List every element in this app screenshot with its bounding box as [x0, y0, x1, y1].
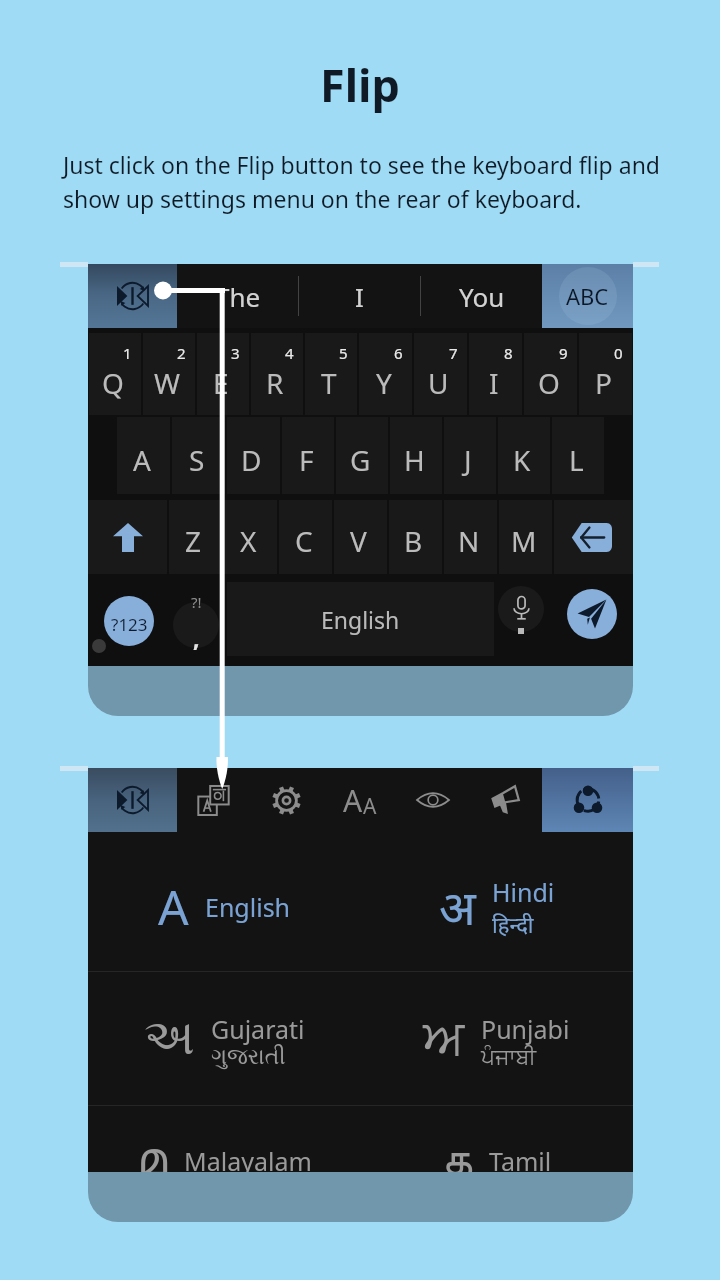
staticText: E: [213, 364, 229, 402]
button[interactable]: Send: [567, 589, 617, 639]
button[interactable]: Share: [542, 768, 633, 832]
button[interactable]: D: [227, 417, 280, 494]
button[interactable]: Backspace: [554, 500, 633, 574]
staticText: ગુજરાતી: [211, 1046, 286, 1068]
staticText: You: [459, 279, 505, 314]
staticText: L: [569, 441, 584, 479]
button[interactable]: 0: [579, 333, 632, 415]
staticText: A: [133, 441, 151, 479]
button[interactable]: 3: [197, 333, 249, 415]
staticText: Y: [376, 364, 392, 402]
button[interactable]: Languages: [177, 768, 250, 832]
staticText: Hindi: [492, 875, 555, 909]
staticText: अ: [439, 874, 476, 939]
button[interactable]: S: [172, 417, 225, 494]
button[interactable]: H: [390, 417, 442, 494]
staticText: G: [350, 441, 371, 479]
button[interactable]: You: [421, 264, 542, 328]
staticText: Q: [102, 364, 124, 402]
staticText: A: [343, 780, 363, 821]
staticText: The: [215, 279, 261, 314]
button[interactable]: K: [498, 417, 550, 494]
button[interactable]: 1: [89, 333, 141, 415]
button[interactable]: F: [282, 417, 334, 494]
button[interactable]: ਅ: [360, 973, 633, 1107]
staticText: 9: [559, 343, 568, 363]
staticText: U: [428, 364, 449, 402]
staticText: F: [299, 441, 314, 479]
button[interactable]: 8: [469, 333, 522, 415]
staticText: J: [464, 441, 472, 479]
staticText: 0: [614, 343, 623, 363]
staticText: N: [458, 522, 480, 560]
staticText: A: [363, 792, 377, 821]
staticText: P: [595, 364, 612, 402]
staticText: हिन्दी: [492, 909, 534, 939]
staticText: മ: [137, 1137, 168, 1172]
staticText: 3: [231, 343, 240, 363]
button[interactable]: 2: [143, 333, 195, 415]
button[interactable]: Z: [169, 500, 222, 574]
staticText: T: [321, 364, 337, 402]
button[interactable]: C: [279, 500, 332, 574]
button[interactable]: த: [360, 1094, 633, 1172]
staticText: S: [189, 441, 205, 479]
staticText: M: [511, 522, 537, 560]
staticText: W: [154, 364, 181, 402]
staticText: H: [404, 441, 425, 479]
staticText: 8: [504, 343, 513, 363]
button[interactable]: Flip keyboard back: [88, 768, 177, 832]
button[interactable]: अ: [360, 839, 633, 973]
staticText: ਅ: [423, 1016, 465, 1064]
staticText: X: [240, 522, 257, 560]
staticText: Just click on the Flip button to see the…: [63, 149, 662, 214]
button[interactable]: Shift: [88, 500, 167, 574]
staticText: R: [266, 364, 284, 402]
button[interactable]: ?!: [171, 580, 221, 661]
staticText: 2: [177, 343, 186, 363]
button[interactable]: L: [552, 417, 604, 494]
button[interactable]: Preview: [396, 768, 469, 832]
button[interactable]: The: [177, 264, 298, 328]
staticText: 4: [285, 343, 294, 363]
button[interactable]: 7: [414, 333, 467, 415]
button[interactable]: 4: [251, 333, 303, 415]
staticText: I: [355, 279, 364, 314]
button[interactable]: Text size: [323, 768, 396, 832]
staticText: Gujarati: [211, 1012, 305, 1046]
button[interactable]: અ: [88, 973, 360, 1107]
button[interactable]: 6: [359, 333, 412, 415]
button[interactable]: N: [444, 500, 497, 574]
staticText: D: [241, 441, 262, 479]
button[interactable]: G: [336, 417, 388, 494]
staticText: 7: [449, 343, 458, 363]
button[interactable]: Feedback: [469, 768, 542, 832]
staticText: த: [441, 1137, 473, 1172]
button[interactable]: B: [389, 500, 442, 574]
button[interactable]: ?123: [104, 596, 154, 646]
button[interactable]: ABC: [542, 264, 633, 328]
staticText: 1: [123, 343, 132, 363]
staticText: I: [489, 364, 499, 402]
button[interactable]: M: [499, 500, 552, 574]
button[interactable]: Voice input: [496, 580, 546, 661]
button[interactable]: A: [88, 839, 360, 973]
staticText: Flip: [0, 54, 720, 115]
button[interactable]: X: [224, 500, 277, 574]
button[interactable]: 5: [305, 333, 357, 415]
button[interactable]: മ: [88, 1094, 360, 1172]
button[interactable]: A: [117, 417, 170, 494]
button[interactable]: J: [444, 417, 496, 494]
button[interactable]: Settings: [250, 768, 323, 832]
staticText: Z: [185, 522, 202, 560]
staticText: Tamil: [489, 1144, 552, 1172]
staticText: A: [158, 874, 189, 939]
button[interactable]: Flip keyboard: [88, 264, 177, 328]
staticText: V: [350, 522, 367, 560]
button[interactable]: English: [227, 582, 494, 656]
button[interactable]: 9: [524, 333, 577, 415]
staticText: English: [321, 604, 400, 635]
button[interactable]: I: [299, 264, 420, 328]
button[interactable]: V: [334, 500, 387, 574]
staticText: English: [205, 890, 291, 924]
